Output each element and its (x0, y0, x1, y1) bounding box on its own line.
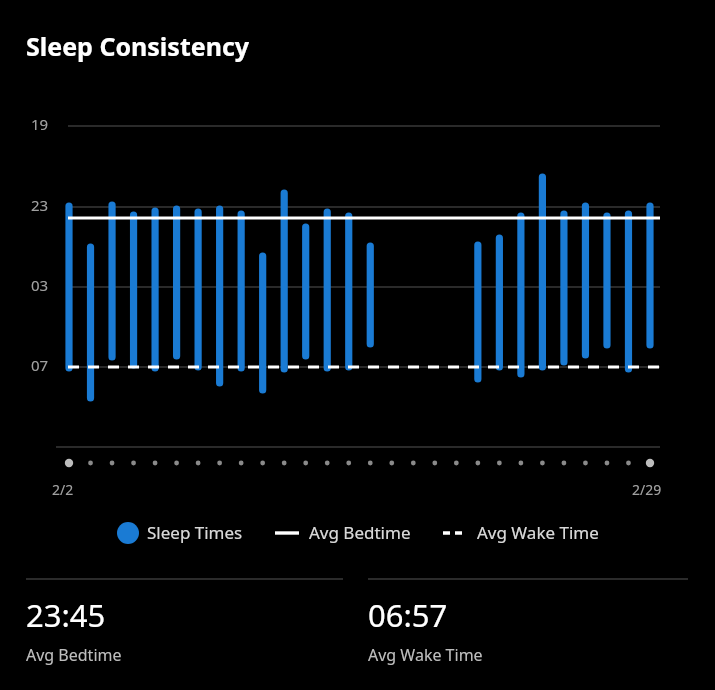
staticText: Avg Bedtime (26, 644, 122, 666)
staticText: Avg Bedtime (309, 521, 411, 544)
staticText: Avg Wake Time (477, 521, 599, 544)
button[interactable]: 23:45 (26, 578, 343, 666)
staticText: 2/2 (52, 480, 74, 499)
button[interactable]: Sleep Times (115, 517, 245, 548)
staticText: Avg Wake Time (368, 644, 483, 666)
staticText: 23 (31, 195, 49, 215)
staticText: Sleep Times (147, 521, 243, 544)
button[interactable]: Avg Wake Time (439, 517, 601, 548)
staticText: 23:45 (26, 594, 106, 636)
staticText: 06:57 (368, 594, 448, 636)
button[interactable]: Avg Bedtime (271, 517, 413, 548)
staticText: 2/29 (632, 480, 662, 499)
button[interactable]: 06:57 (368, 578, 688, 666)
staticText: 07 (31, 355, 49, 375)
staticText: Sleep Consistency (26, 29, 250, 63)
button[interactable]: Sleep consistency chart (0, 0, 715, 690)
staticText: 03 (31, 275, 49, 295)
staticText: 19 (31, 114, 49, 134)
